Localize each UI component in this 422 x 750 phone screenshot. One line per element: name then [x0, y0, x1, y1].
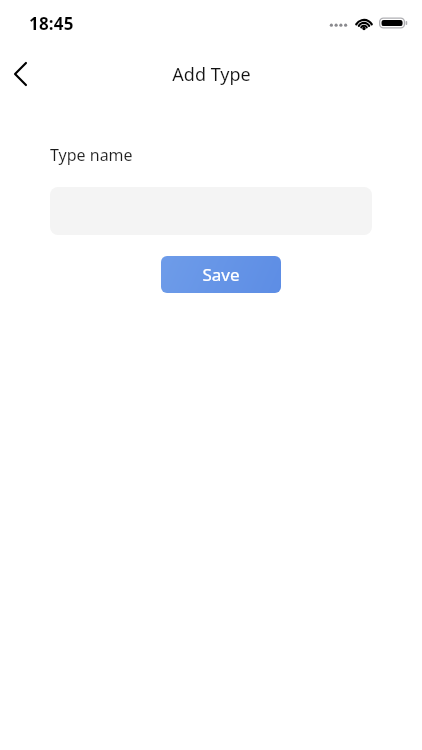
button[interactable]: Back — [0, 50, 44, 98]
button[interactable]: Save — [161, 256, 281, 293]
staticText: 18:45 — [29, 12, 74, 35]
staticText: Save — [202, 263, 240, 286]
staticText: Type name — [50, 144, 133, 166]
staticText: Add Type — [172, 62, 251, 87]
